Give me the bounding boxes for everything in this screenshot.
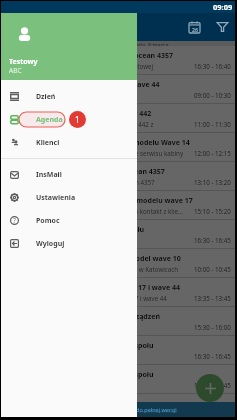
staticText: InsMail (36, 170, 62, 180)
button[interactable]: Calendar (180, 13, 208, 41)
button[interactable]: Filter (208, 13, 236, 41)
button[interactable]: Wymiana profili do kabiny pryszni ocean … (0, 162, 237, 191)
staticText: 16:30 - 16:40 (194, 62, 231, 70)
staticText: Agenda (36, 115, 63, 125)
staticText (6, 381, 186, 389)
staticText: Spotkanie z klientem w biurze przy ul. K… (6, 62, 186, 70)
staticText: 09:09 (213, 2, 233, 12)
staticText: 13:10 - 13:20 (194, 178, 231, 186)
button[interactable]: Dzień (0, 85, 137, 108)
staticText: Proszę o telefon przed przyjazdem na mie… (6, 149, 186, 157)
staticText: Zgłoszenie serwis modelu wave 17. Prosim… (6, 207, 186, 215)
staticText: Montaż nowych kabin prysznicowych wave 1… (6, 294, 186, 302)
staticText: Zgłoszenie serwisowe kabiny prysznicowej… (6, 120, 186, 128)
staticText: 16:30 - 16:45 (194, 236, 231, 244)
staticText: ABC (9, 66, 22, 75)
staticText: Zebranie wszystkich pracowników zespołu (6, 341, 154, 351)
staticText: ? (13, 216, 16, 225)
staticText: 1 (75, 114, 80, 125)
staticText: Wyloguj (36, 239, 65, 249)
staticText: Zebranie pracowników naszego zespołu (6, 225, 145, 235)
button[interactable]: Agenda (0, 108, 137, 131)
button[interactable]: Zebranie wszystkich pracowników zespołu (0, 365, 237, 394)
staticText (6, 91, 186, 99)
staticText: 15:10 - 15:20 (194, 207, 231, 215)
staticText: 12:00 - 12:15 (194, 149, 231, 157)
staticText: 26 (192, 26, 198, 33)
staticText: FIRMA HANDLOWA "SZCZYRK" SPÓŁKA Z O.O. w… (6, 265, 186, 273)
staticText: Naprawa drzwi przesuwnych nowy model wav… (6, 254, 181, 264)
staticText: 16:30 - 16:45 (194, 381, 231, 389)
staticText: Testowy (9, 57, 38, 67)
staticText (6, 236, 186, 244)
staticText: Przejdź do pełnej wersji (116, 406, 177, 413)
button[interactable]: Serwis gwarancyjny kabin prysznicow 442 (0, 104, 237, 133)
staticText: 11:00 - 11:30 (194, 120, 231, 128)
staticText: Serwis gwarancyjny kabin prysznicow 442 (6, 109, 152, 119)
staticText: 15:30 - 16:00 (194, 323, 231, 331)
staticText (6, 352, 186, 360)
staticText: Przegląd serwisowy zakupionych urządzeń (6, 323, 186, 331)
staticText: 16:30 - 16:45 (194, 352, 231, 360)
staticText: Montaż kabin prysznicowych nr wave 17 i … (6, 283, 181, 293)
button[interactable]: Naprawa drzwi suwanych w kabinie modelu … (0, 133, 237, 162)
button[interactable]: Klienci (0, 131, 137, 154)
button[interactable]: Wymiana szyby w kabinie pryszniow ocean … (0, 46, 237, 75)
button[interactable]: Zebranie pracowników naszego zespołu (0, 220, 237, 249)
staticText: 13:35 - 13:45 (194, 294, 231, 302)
button[interactable]: Montaż drzwi w kabinie prysznicow wave 4… (0, 75, 237, 104)
button[interactable]: Add event (196, 374, 224, 402)
staticText: Wymiana szyby w kabinie pryszniow ocean … (6, 51, 173, 61)
button[interactable]: Montaż kabin prysznicowych nr wave 17 i … (0, 278, 237, 307)
staticText: Dzień (36, 92, 56, 102)
button[interactable]: Przegląd serwisowy zakup nowych urządzeń (0, 307, 237, 336)
button[interactable]: Wyloguj (0, 232, 137, 255)
staticText: Ustawienia (36, 193, 76, 203)
button[interactable]: ? (0, 209, 137, 232)
staticText: Serwis techniczny kabiny prysznicow mode… (6, 196, 193, 206)
button[interactable]: Ustawienia (0, 186, 137, 209)
staticText: Przegląd serwisowy zakup nowych urządzeń (6, 312, 160, 322)
button[interactable]: Przejdź do pełnej wersji (0, 402, 237, 417)
staticText: Naprawa drzwi suwanych w kabinie modelu … (6, 138, 190, 148)
staticText: Pomoc (36, 216, 60, 226)
staticText: Montaż drzwi w kabinie prysznicow wave 4… (6, 80, 160, 90)
button[interactable]: Naprawa drzwi przesuwnych nowy model wav… (0, 249, 237, 278)
staticText: Wymiana profili do kabiny pryszni ocean … (6, 167, 165, 177)
button[interactable]: Serwis techniczny kabiny prysznicow mode… (0, 191, 237, 220)
staticText: 09:00 - 10:30 (194, 91, 231, 99)
staticText: Zebranie wszystkich pracowników zespołu (6, 370, 154, 380)
staticText: 10:00 - 10:45 (194, 265, 231, 273)
button[interactable]: InsMail (0, 163, 137, 186)
staticText: Wymiana profili w kabinie prysznicowej o… (6, 178, 186, 186)
staticText: Sroda, 8 marca (130, 41, 169, 46)
button[interactable]: Zebranie wszystkich pracowników zespołu (0, 336, 237, 365)
staticText: Klienci (36, 138, 60, 148)
